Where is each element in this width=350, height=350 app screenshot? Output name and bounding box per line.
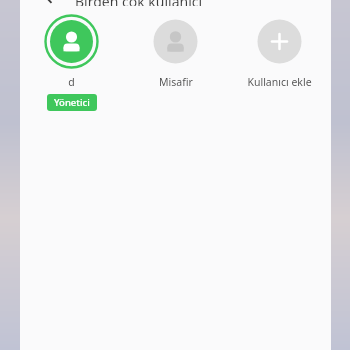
staticText: Kullanıcı ekle (247, 75, 312, 89)
button[interactable]: d (44, 14, 99, 111)
staticText: Yönetici (54, 96, 90, 109)
staticText: d (68, 75, 75, 89)
button[interactable]: Geri (38, 0, 60, 5)
button[interactable]: Misafir (148, 14, 203, 89)
staticText: Birden çok kullanıcı (75, 0, 203, 6)
staticText: Misafir (159, 75, 193, 89)
button[interactable]: Kullanıcı ekle (247, 14, 312, 89)
other: Kullanıcı ekle (252, 14, 307, 69)
